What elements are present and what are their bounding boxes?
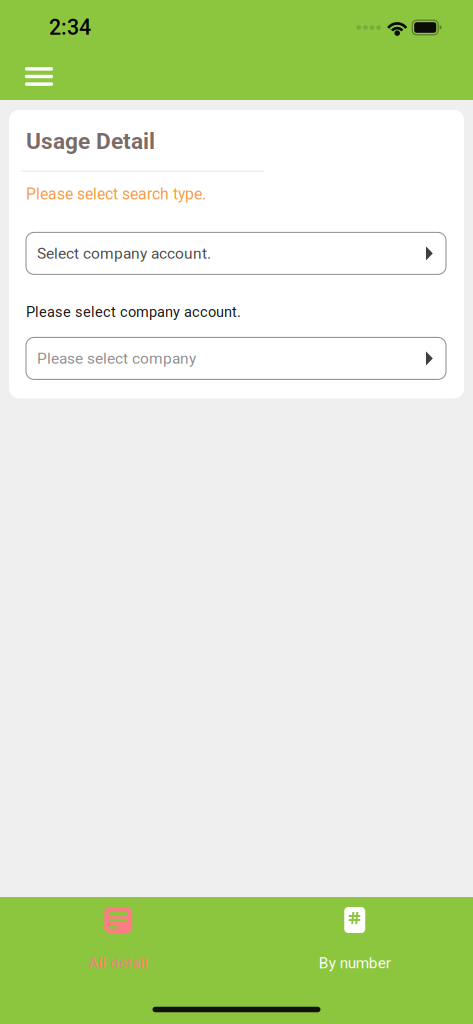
staticText: 2:34 bbox=[49, 15, 91, 40]
staticText: Please select company bbox=[37, 349, 196, 367]
button[interactable]: By number bbox=[236, 897, 473, 995]
staticText: Please select search type. bbox=[26, 185, 206, 203]
button[interactable]: Select company account. bbox=[26, 232, 446, 274]
staticText: Select company account. bbox=[37, 244, 211, 262]
staticText: All detail bbox=[88, 954, 148, 972]
staticText: Usage Detail bbox=[26, 128, 155, 155]
button[interactable]: Menu bbox=[0, 53, 71, 100]
staticText: Please select company account. bbox=[26, 303, 241, 320]
staticText: By number bbox=[319, 954, 391, 972]
button[interactable]: Please select company bbox=[26, 337, 446, 379]
button[interactable]: All detail bbox=[0, 897, 236, 995]
